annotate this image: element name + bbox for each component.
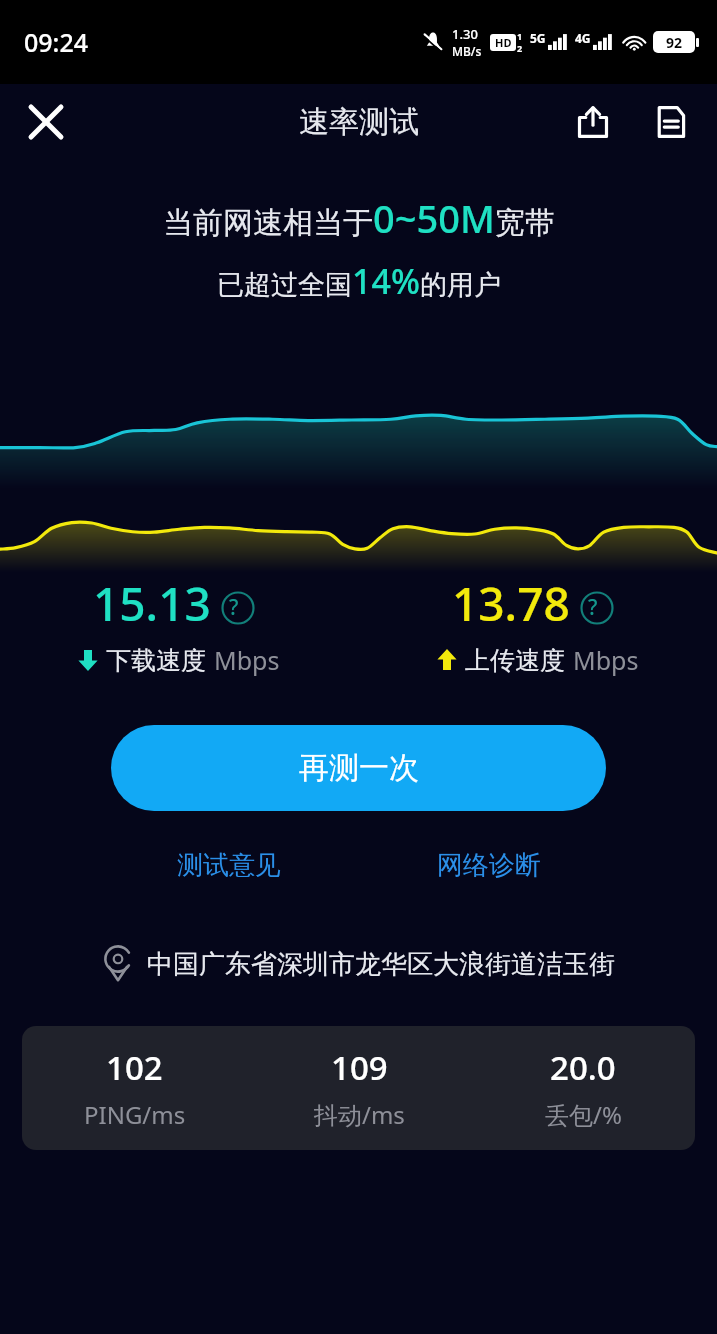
staticText: 再测一次 — [299, 749, 419, 787]
staticText: 13.78 — [452, 572, 570, 635]
staticText: ? — [229, 593, 239, 622]
staticText: 15.13 — [93, 572, 211, 635]
staticText: 丢包/% — [545, 1098, 622, 1131]
staticText: 20.0 — [550, 1045, 616, 1090]
button[interactable]: 测试意见 — [177, 849, 281, 882]
staticText: 1 — [517, 30, 523, 42]
staticText: 4G — [575, 30, 591, 46]
staticText: 已超过全国14%的用户 — [217, 258, 501, 304]
staticText: Mbps — [573, 643, 639, 677]
staticText: HD — [495, 35, 512, 50]
button[interactable]: 中国广东省深圳市龙华区大浪街道洁玉街 — [0, 946, 717, 982]
staticText: 5G — [530, 30, 546, 46]
button[interactable]: Report — [643, 94, 699, 150]
staticText: 102 — [106, 1045, 163, 1090]
staticText: 中国广东省深圳市龙华区大浪街道洁玉街 — [147, 948, 615, 981]
staticText: ? — [588, 593, 598, 622]
staticText: PING/ms — [84, 1098, 186, 1131]
staticText: 当前网速相当于0~50M宽带 — [163, 192, 555, 244]
button[interactable]: 102 — [22, 1026, 695, 1150]
button[interactable]: 再测一次 — [111, 725, 606, 811]
staticText: 测试意见 — [177, 849, 281, 882]
staticText: 1.30 — [452, 25, 478, 43]
staticText: 09:24 — [24, 25, 89, 59]
button[interactable]: 网络诊断 — [437, 849, 541, 882]
staticText: 2 — [517, 42, 523, 54]
staticText: 109 — [331, 1045, 388, 1090]
staticText: 下载速度 — [106, 645, 206, 676]
staticText: Mbps — [214, 643, 280, 677]
button[interactable]: Close — [16, 92, 76, 152]
staticText: 抖动/ms — [314, 1098, 405, 1131]
button[interactable]: 13.78 — [358, 572, 717, 677]
staticText: 速率测试 — [299, 103, 419, 141]
button[interactable]: 15.13 — [0, 572, 358, 677]
staticText: 上传速度 — [465, 645, 565, 676]
staticText: 92 — [666, 33, 683, 52]
staticText: 网络诊断 — [437, 849, 541, 882]
button[interactable]: Share — [565, 94, 621, 150]
staticText: MB/s — [452, 43, 482, 59]
